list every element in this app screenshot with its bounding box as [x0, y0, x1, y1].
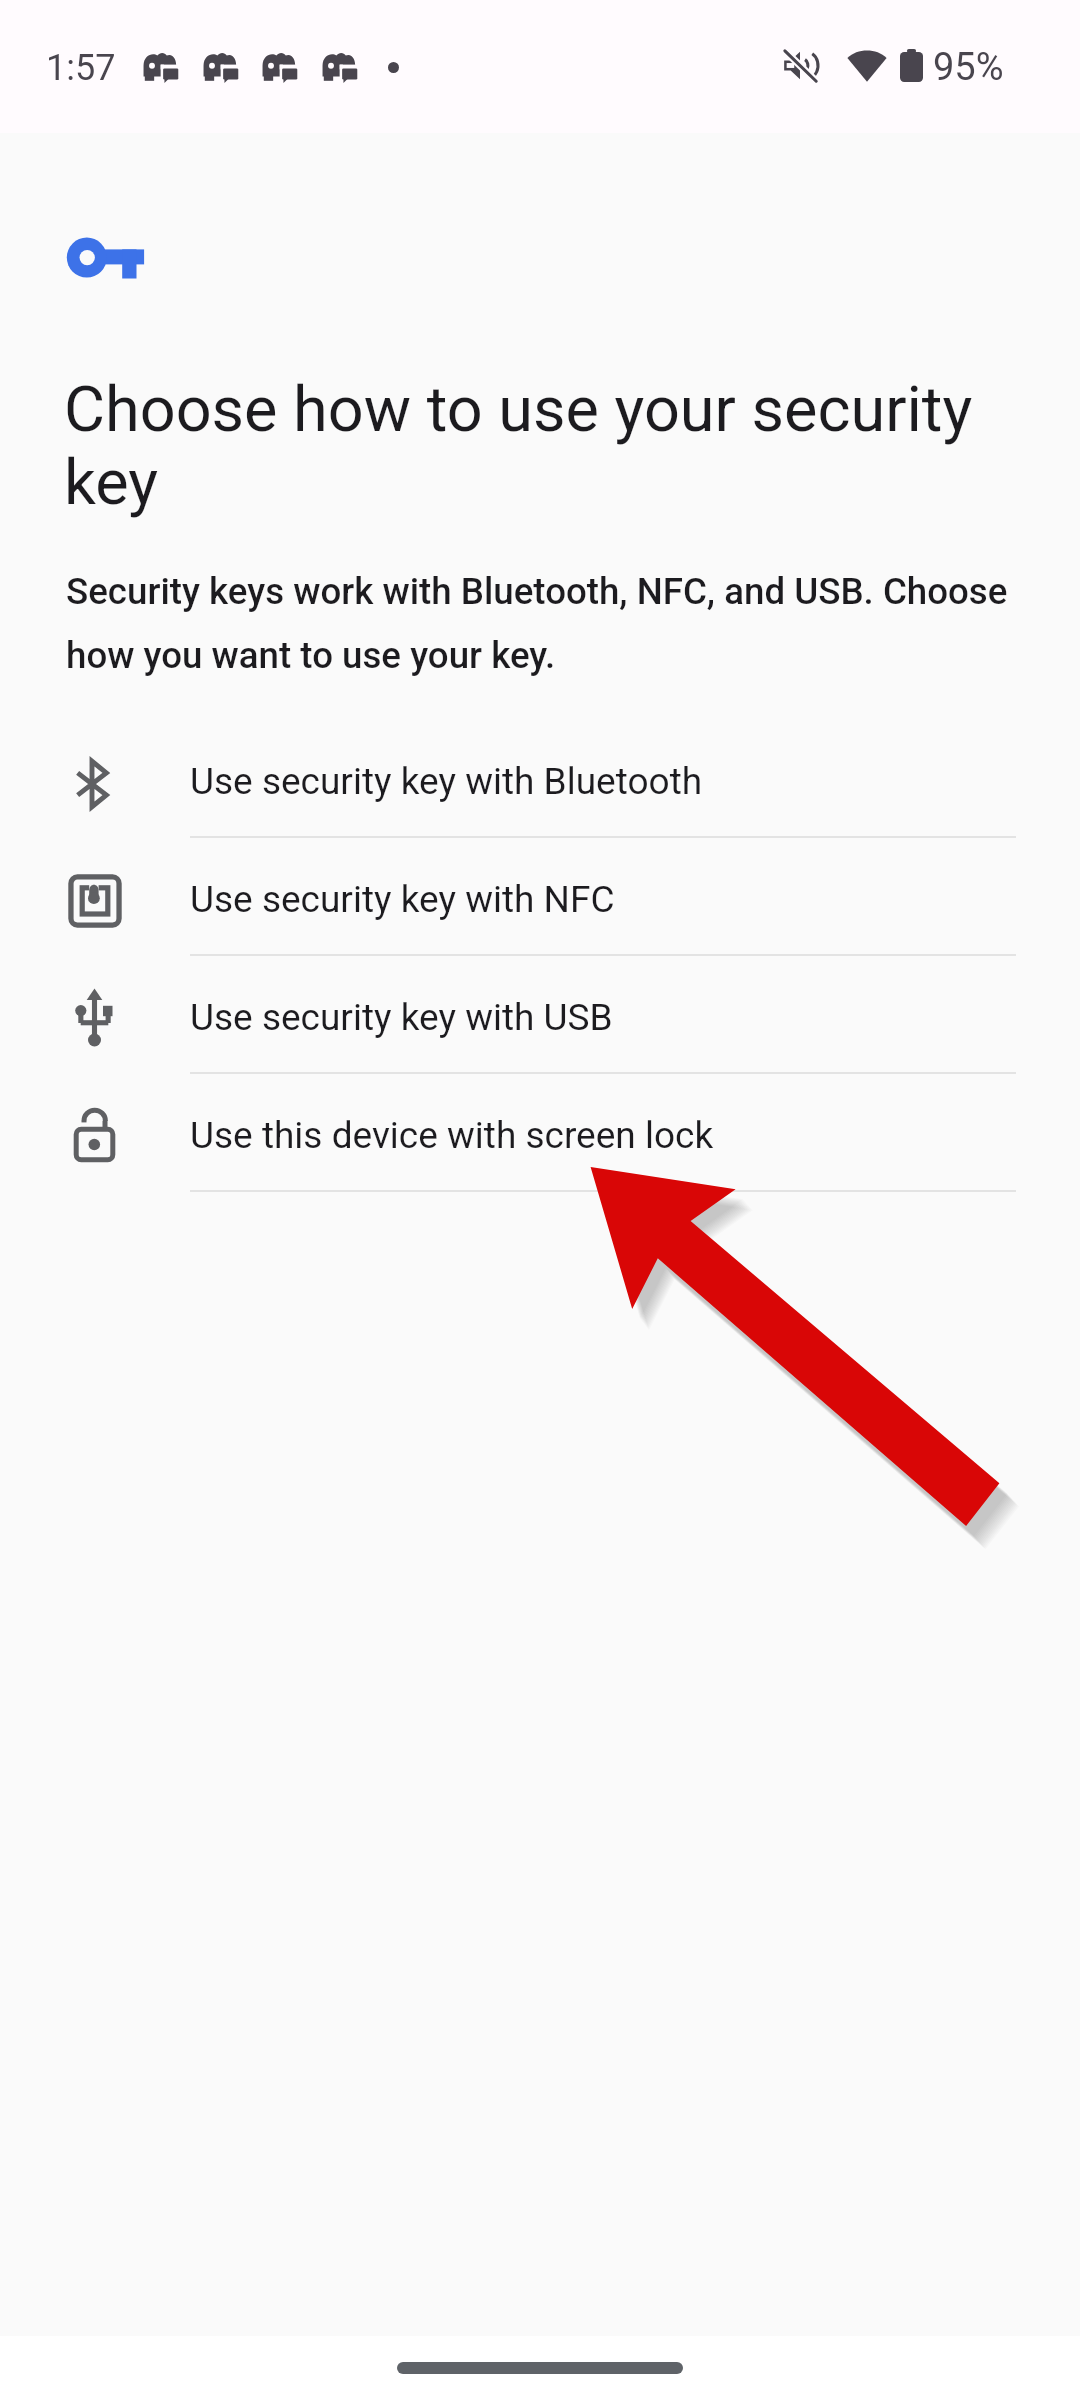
- staticText: 1:57: [46, 47, 116, 89]
- staticText: Choose how to use your security key: [64, 373, 1014, 519]
- staticText: Use security key with NFC: [190, 878, 615, 921]
- staticText: Use security key with USB: [190, 996, 613, 1039]
- staticText: Security keys work with Bluetooth, NFC, …: [66, 570, 1026, 677]
- staticText: 95%: [933, 45, 1004, 90]
- button[interactable]: USB: [0, 959, 1080, 1077]
- other: Screen lock: [67, 1112, 123, 1168]
- button[interactable]: Screen lock: [0, 1077, 1080, 1195]
- other: NFC: [67, 876, 123, 932]
- other: USB: [67, 994, 123, 1050]
- button[interactable]: Bluetooth: [0, 723, 1080, 841]
- staticText: Use security key with Bluetooth: [190, 760, 703, 803]
- button[interactable]: NFC: [0, 841, 1080, 959]
- other: Bluetooth: [67, 758, 123, 814]
- staticText: Use this device with screen lock: [190, 1114, 714, 1157]
